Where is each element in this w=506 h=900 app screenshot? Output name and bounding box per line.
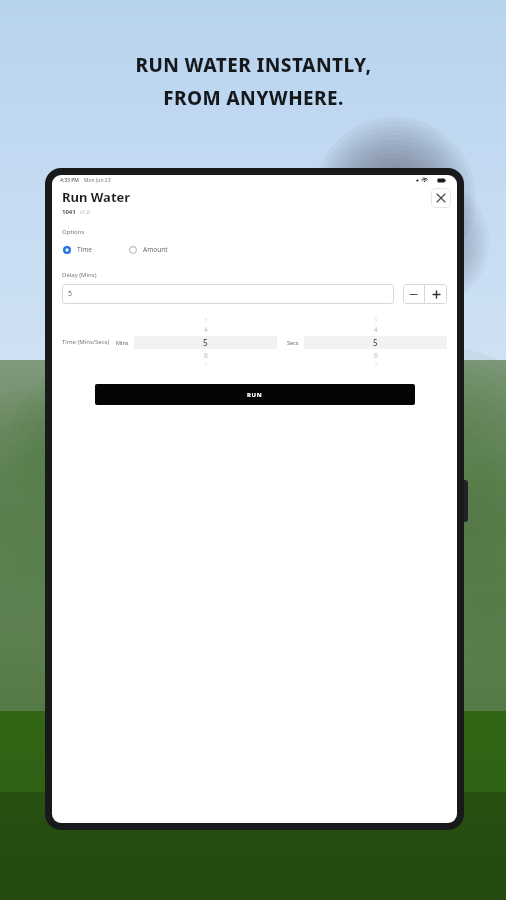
staticText: RUN xyxy=(247,391,263,399)
staticText: Delay (Mins) xyxy=(62,271,97,279)
button[interactable]: 3 xyxy=(134,316,277,368)
staticText: Amount xyxy=(143,245,168,254)
staticText: Time xyxy=(77,245,93,254)
staticText: 5 xyxy=(203,337,208,348)
button[interactable]: 5 xyxy=(62,284,394,304)
staticText: 5 xyxy=(68,289,73,299)
staticText: 6 xyxy=(374,351,378,360)
staticText: v1.0 xyxy=(80,209,90,216)
staticText: Mon Jun 23 xyxy=(84,177,111,184)
staticText: 3 xyxy=(204,316,208,324)
staticText: Mins xyxy=(116,339,129,346)
staticText: Run Water xyxy=(62,188,131,206)
staticText: 4 xyxy=(374,325,378,334)
staticText: 7 xyxy=(204,361,208,368)
button[interactable]: 3 xyxy=(304,316,447,368)
button[interactable]: Decrease xyxy=(403,284,424,304)
button[interactable]: Amount xyxy=(128,242,169,257)
staticText: Time (Mins/Secs) xyxy=(62,338,110,346)
staticText: 6 xyxy=(204,351,208,360)
staticText: 5 xyxy=(373,337,378,348)
staticText: Secs xyxy=(287,339,299,346)
staticText: 3 xyxy=(374,316,378,324)
button[interactable]: Increase xyxy=(425,284,447,304)
staticText: 7 xyxy=(374,361,378,368)
staticText: FROM ANYWHERE. xyxy=(163,85,344,111)
button[interactable]: RUN xyxy=(95,384,415,405)
staticText: 4 xyxy=(204,325,208,334)
button[interactable]: Close xyxy=(431,188,451,208)
staticText: RUN WATER INSTANTLY, xyxy=(135,52,372,78)
staticText: 4:33 PM xyxy=(60,177,79,184)
staticText: 1041 xyxy=(62,208,76,216)
staticText: Options xyxy=(62,228,85,236)
button[interactable]: Time xyxy=(62,242,94,257)
